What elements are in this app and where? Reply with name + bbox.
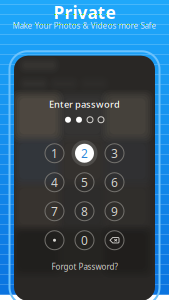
staticText: Enter password <box>49 98 120 110</box>
button[interactable]: 7 <box>39 197 69 226</box>
button[interactable]: 5 <box>69 168 99 197</box>
staticText: 0 <box>81 232 88 248</box>
button[interactable]: 0 <box>69 226 99 255</box>
staticText: 7 <box>51 203 58 219</box>
button[interactable]: 4 <box>39 168 69 197</box>
staticText: 5 <box>81 174 88 190</box>
button[interactable]: 9 <box>99 197 129 226</box>
staticText: 4 <box>51 174 58 190</box>
button[interactable]: 3 <box>99 139 129 168</box>
staticText: 6 <box>111 174 118 190</box>
button[interactable]: 6 <box>99 168 129 197</box>
staticText: 2 <box>81 145 88 161</box>
staticText: Make Your Photos & Videos more Safe <box>12 20 156 31</box>
button[interactable]: Forgot Password? <box>14 255 155 273</box>
button[interactable]: 2 <box>69 139 99 168</box>
staticText: 1 <box>51 145 58 161</box>
staticText: Private <box>53 1 115 24</box>
staticText: Forgot Password? <box>51 261 117 272</box>
button[interactable] <box>99 226 129 255</box>
button[interactable] <box>39 226 69 255</box>
button[interactable]: 8 <box>69 197 99 226</box>
staticText: 3 <box>111 145 118 161</box>
staticText: 9 <box>111 203 118 219</box>
staticText: 8 <box>81 203 88 219</box>
button[interactable]: 1 <box>39 139 69 168</box>
